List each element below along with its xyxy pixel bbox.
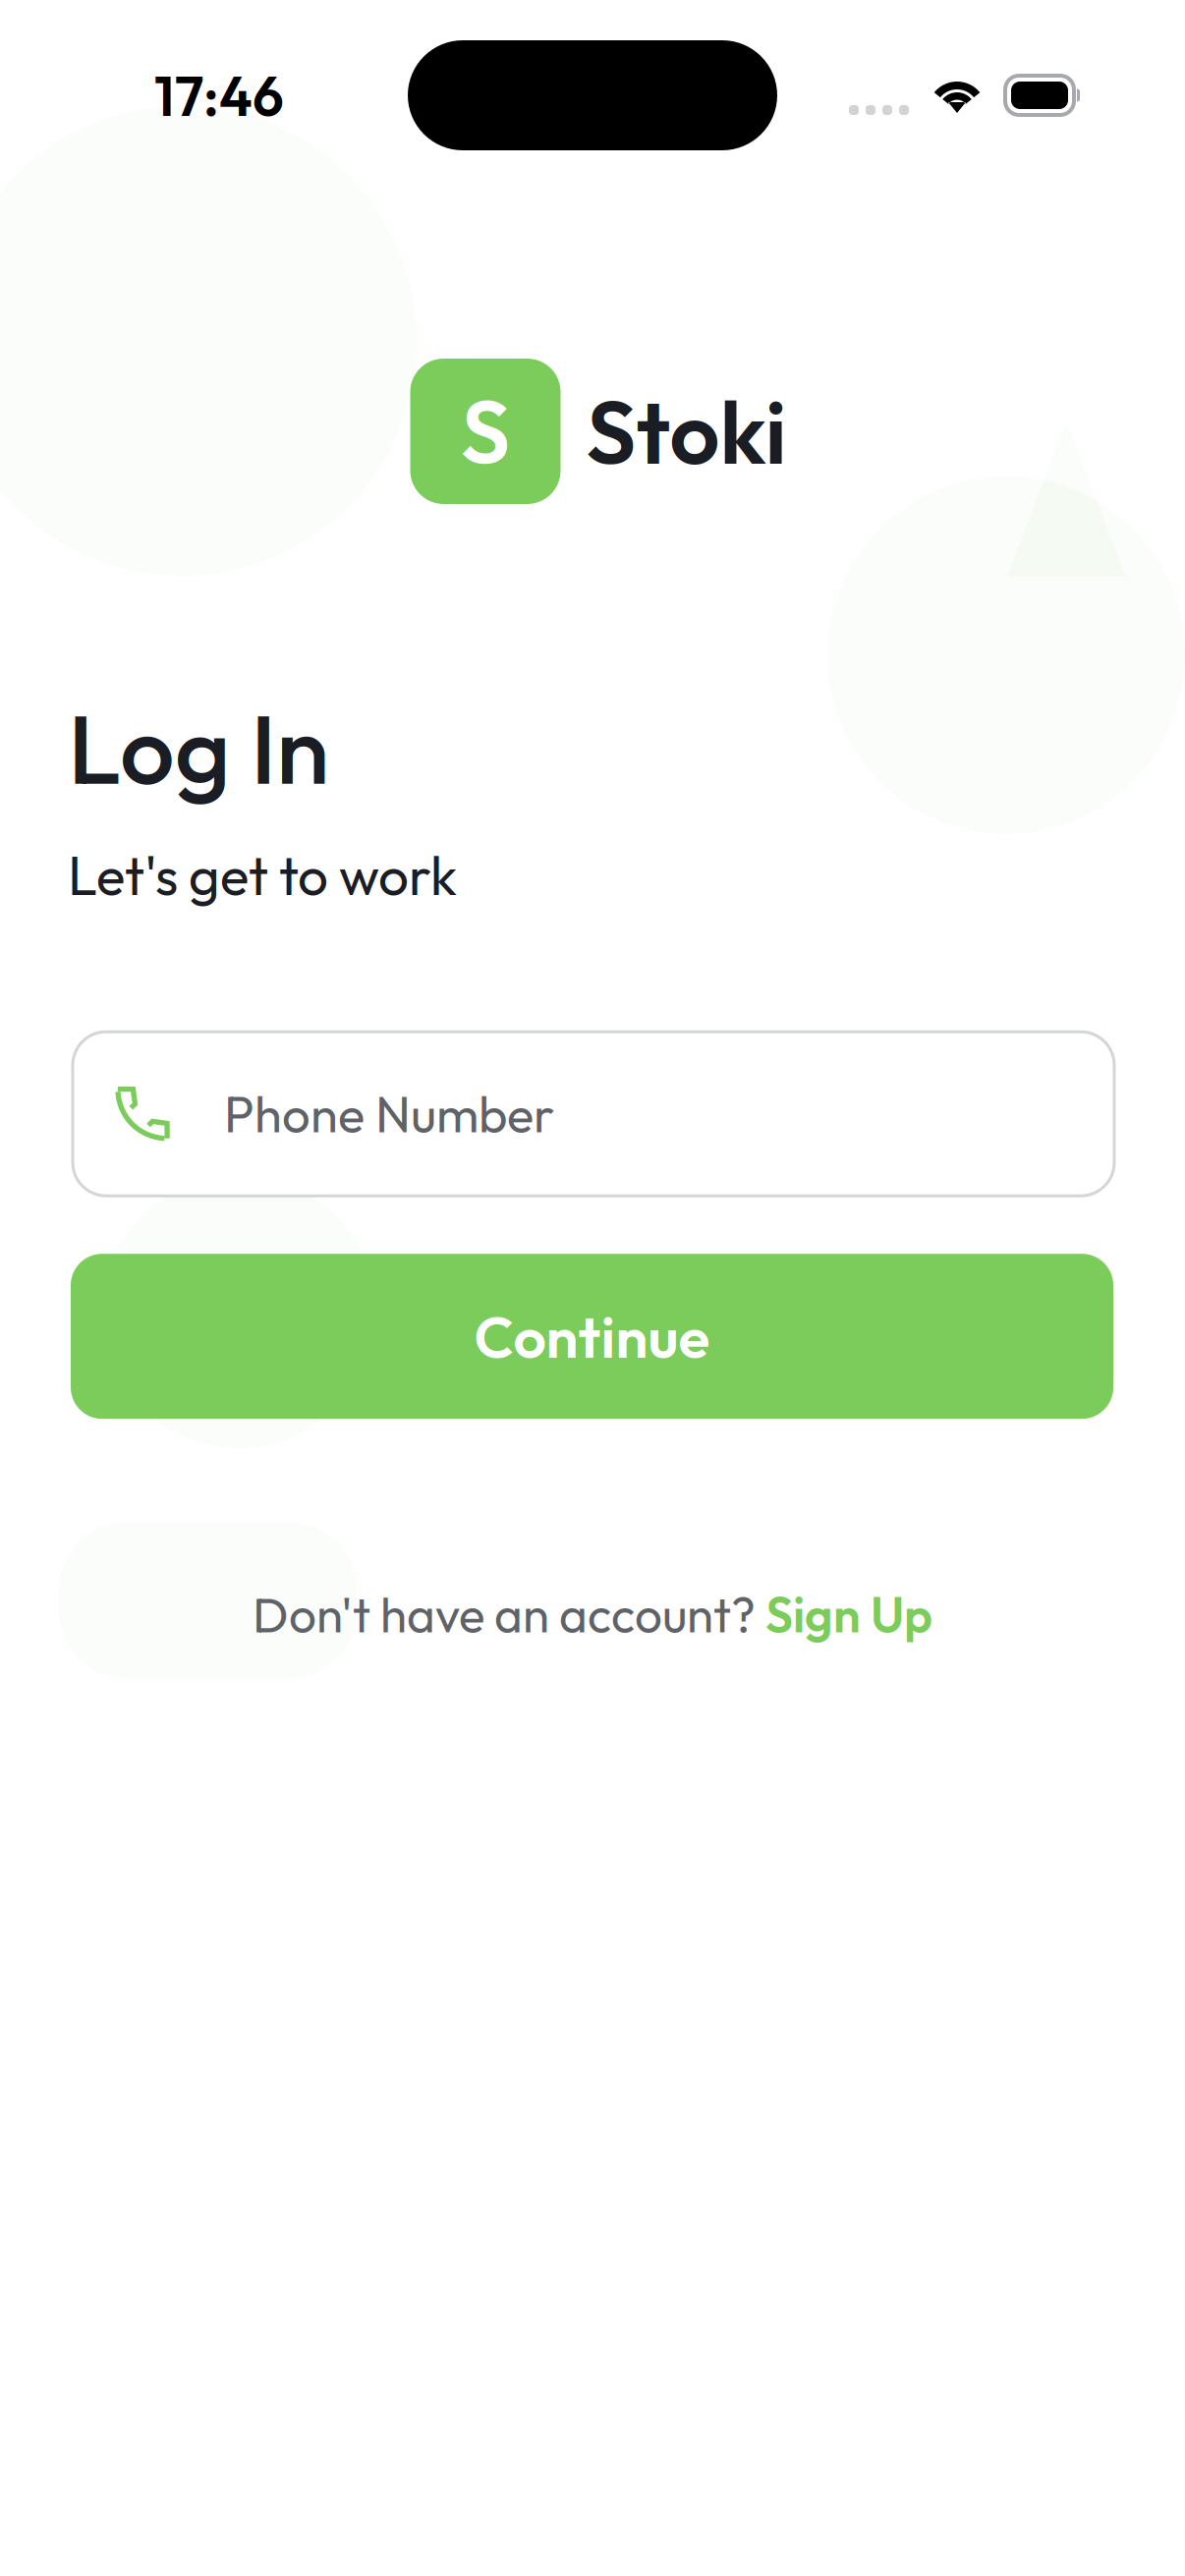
staticText: 17:46 bbox=[154, 61, 284, 130]
staticText: S bbox=[461, 377, 510, 486]
staticText: Stoki bbox=[586, 376, 787, 487]
staticText: Don't have an account? bbox=[253, 1584, 765, 1645]
staticText: Log In bbox=[68, 687, 329, 809]
staticText: Let's get to work bbox=[68, 841, 457, 909]
staticText: Sign Up bbox=[765, 1584, 932, 1645]
button[interactable]: Don't have an account? bbox=[253, 1584, 932, 1645]
button[interactable]: Continue bbox=[71, 1254, 1113, 1419]
staticText: Continue bbox=[474, 1300, 710, 1373]
staticText: Phone Number bbox=[224, 1082, 554, 1145]
